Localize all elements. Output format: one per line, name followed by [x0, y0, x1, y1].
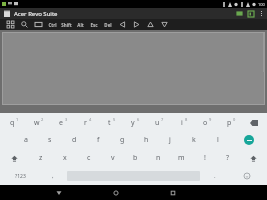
staticText: Esc: [90, 22, 98, 28]
staticText: Ctrl: [48, 22, 57, 28]
button[interactable]: Keyboard settings: [246, 9, 256, 18]
button[interactable]: Del: [101, 19, 115, 30]
button[interactable]: n: [147, 149, 170, 167]
button[interactable]: Esc: [87, 19, 101, 30]
button[interactable]: e: [49, 114, 73, 131]
button[interactable]: k: [182, 131, 206, 149]
button[interactable]: p: [217, 114, 241, 131]
staticText: v: [111, 153, 115, 163]
staticText: h: [144, 135, 149, 145]
button[interactable]: f: [86, 131, 110, 149]
staticText: m: [178, 153, 185, 163]
button[interactable]: ,: [40, 167, 65, 185]
staticText: l: [217, 135, 219, 145]
staticText: g: [120, 135, 125, 145]
staticText: q: [10, 118, 15, 128]
button[interactable]: h: [134, 131, 158, 149]
button[interactable]: Search: [17, 19, 31, 30]
staticText: p: [227, 118, 232, 128]
button[interactable]: Display: [234, 9, 244, 18]
button[interactable]: x: [53, 149, 77, 167]
button[interactable]: ?123: [0, 167, 40, 185]
button[interactable]: u: [145, 114, 169, 131]
button[interactable]: Recents: [164, 185, 182, 200]
button[interactable]: r: [73, 114, 97, 131]
button[interactable]: Left: [115, 19, 129, 30]
staticText: d: [72, 135, 77, 145]
button[interactable]: a: [14, 131, 38, 149]
button[interactable]: o: [193, 114, 217, 131]
staticText: ?: [226, 153, 230, 163]
staticText: k: [192, 135, 196, 145]
button[interactable]: g: [110, 131, 134, 149]
button[interactable]: ?: [216, 149, 239, 167]
button[interactable]: [2, 32, 265, 105]
button[interactable]: Home: [107, 185, 125, 200]
staticText: e: [59, 118, 63, 128]
button[interactable]: Right: [129, 19, 143, 30]
staticText: n: [156, 153, 161, 163]
button[interactable]: Enter: [230, 131, 267, 149]
button[interactable]: i: [169, 114, 193, 131]
staticText: 8: [185, 117, 188, 122]
staticText: x: [63, 153, 67, 163]
staticText: f: [97, 135, 100, 145]
button[interactable]: d: [62, 131, 86, 149]
button[interactable]: Backspace: [241, 114, 267, 131]
staticText: 100: [258, 2, 265, 7]
button[interactable]: !: [193, 149, 216, 167]
staticText: ?123: [15, 173, 26, 180]
staticText: z: [39, 153, 43, 163]
staticText: Del: [104, 22, 112, 28]
button[interactable]: v: [101, 149, 124, 167]
button[interactable]: Keyboard: [31, 19, 45, 30]
staticText: a: [24, 135, 28, 145]
button[interactable]: l: [206, 131, 230, 149]
staticText: t: [108, 118, 111, 128]
staticText: u: [155, 118, 160, 128]
staticText: i: [181, 118, 183, 128]
staticText: !: [204, 153, 206, 163]
staticText: c: [87, 153, 91, 163]
staticText: 7: [161, 117, 164, 122]
staticText: ,: [52, 172, 54, 180]
button[interactable]: m: [170, 149, 193, 167]
staticText: 2: [41, 117, 44, 122]
staticText: .: [214, 172, 216, 180]
button[interactable]: Emoji: [227, 167, 267, 185]
button[interactable]: z: [29, 149, 53, 167]
button[interactable]: c: [77, 149, 101, 167]
staticText: Acer Revo Suite: [14, 10, 58, 18]
button[interactable]: j: [158, 131, 182, 149]
staticText: r: [84, 118, 87, 128]
button[interactable]: Down: [157, 19, 171, 30]
staticText: Shift: [61, 22, 72, 28]
button[interactable]: y: [121, 114, 145, 131]
button[interactable]: Up: [143, 19, 157, 30]
staticText: 3: [65, 117, 68, 122]
button[interactable]: s: [38, 131, 62, 149]
button[interactable]: Shift: [239, 149, 267, 167]
button[interactable]: b: [124, 149, 147, 167]
button[interactable]: Apps: [3, 19, 17, 30]
button[interactable]: Alt: [73, 19, 87, 30]
staticText: Alt: [77, 22, 84, 28]
staticText: 0: [233, 117, 236, 122]
button[interactable]: Ctrl: [45, 19, 59, 30]
staticText: 4: [89, 117, 92, 122]
staticText: 1: [16, 117, 19, 122]
button[interactable]: More options: [257, 9, 265, 18]
button[interactable]: Back: [50, 185, 68, 200]
staticText: y: [131, 118, 135, 128]
staticText: b: [133, 153, 138, 163]
staticText: w: [34, 118, 40, 128]
button[interactable]: t: [97, 114, 121, 131]
button[interactable]: Shift: [59, 19, 73, 30]
staticText: s: [48, 135, 52, 145]
button[interactable]: w: [25, 114, 49, 131]
button[interactable]: q: [0, 114, 25, 131]
staticText: 9: [209, 117, 212, 122]
button[interactable]: Shift: [0, 149, 29, 167]
